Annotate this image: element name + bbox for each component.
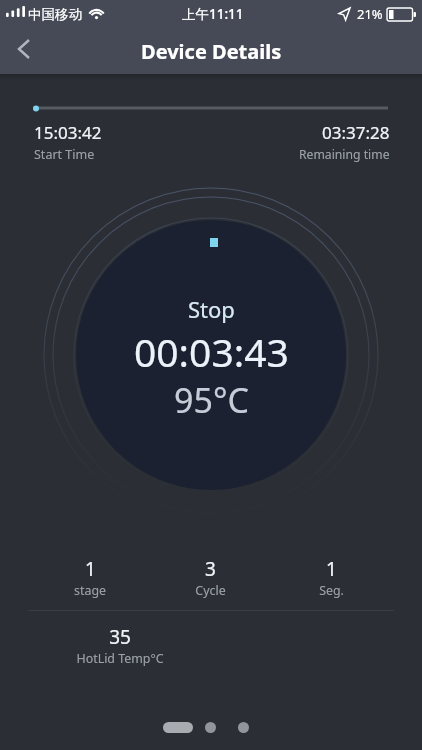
staticText: 1 <box>326 556 337 582</box>
staticText: 15:03:42 <box>34 121 102 144</box>
button[interactable]: Page 3 <box>238 722 249 733</box>
staticText: 03:37:28 <box>322 121 390 144</box>
staticText: 中国移动 <box>28 6 82 23</box>
button[interactable]: 1 <box>30 556 150 599</box>
staticText: 上午11:11 <box>182 5 244 23</box>
staticText: HotLid Temp°C <box>76 650 164 667</box>
staticText: 3 <box>205 556 216 582</box>
staticText: stage <box>74 582 106 599</box>
button[interactable]: 35 <box>30 624 210 667</box>
staticText: Device Details <box>141 38 282 65</box>
staticText: Remaining time <box>299 146 390 163</box>
staticText: Cycle <box>195 582 226 599</box>
staticText: Seg. <box>319 582 344 599</box>
button[interactable]: Stop 00:03:43 95°C <box>76 220 346 490</box>
staticText: 00:03:43 <box>134 325 289 378</box>
button[interactable]: 3 <box>150 556 271 599</box>
button[interactable]: Page 2 <box>205 722 216 733</box>
staticText: 35 <box>109 624 131 650</box>
staticText: Start Time <box>34 146 95 163</box>
staticText: 1 <box>85 556 96 582</box>
button[interactable]: Back <box>0 27 44 71</box>
button[interactable]: 1 <box>271 556 392 599</box>
button[interactable]: Page 1 <box>163 722 193 733</box>
staticText: Stop <box>188 294 235 324</box>
staticText: 95°C <box>174 377 249 423</box>
staticText: 21% <box>357 5 383 23</box>
